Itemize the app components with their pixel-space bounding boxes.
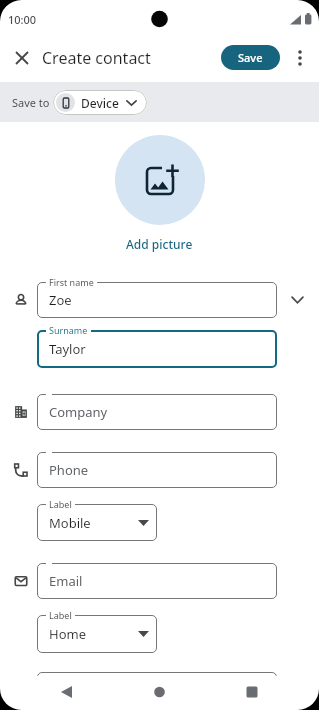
staticText: Taylor bbox=[49, 340, 86, 358]
button[interactable] bbox=[115, 135, 205, 225]
staticText: Device bbox=[81, 95, 119, 111]
staticText: Home bbox=[49, 625, 86, 643]
button[interactable]: Zoe bbox=[37, 282, 277, 318]
button[interactable]: Phone bbox=[37, 452, 277, 488]
staticText: Mobile bbox=[49, 514, 91, 532]
button[interactable]: Email bbox=[37, 563, 277, 599]
button[interactable]: Taylor bbox=[37, 330, 277, 368]
staticText: Email bbox=[49, 572, 83, 590]
staticText: Zoe bbox=[49, 291, 72, 309]
staticText: Save bbox=[238, 50, 263, 65]
staticText: 10:00 bbox=[8, 12, 37, 27]
button[interactable]: Device bbox=[53, 90, 147, 115]
button[interactable]: Add picture bbox=[126, 236, 193, 252]
button[interactable] bbox=[296, 50, 304, 66]
staticText: Phone bbox=[49, 461, 89, 479]
staticText: Save to bbox=[12, 95, 50, 110]
staticText: Label bbox=[49, 498, 72, 510]
staticText: Surname bbox=[49, 324, 88, 336]
staticText: Create contact bbox=[42, 47, 151, 69]
button[interactable] bbox=[0, 676, 107, 710]
button[interactable]: Save bbox=[221, 45, 280, 70]
button[interactable]: Mobile bbox=[37, 504, 157, 541]
button[interactable]: Company bbox=[37, 394, 277, 430]
button[interactable]: Home bbox=[37, 615, 157, 653]
button[interactable] bbox=[291, 296, 304, 304]
staticText: Add picture bbox=[126, 236, 193, 252]
button[interactable] bbox=[15, 51, 29, 65]
staticText: First name bbox=[49, 276, 94, 288]
button[interactable] bbox=[107, 676, 213, 710]
staticText: Company bbox=[49, 403, 108, 421]
button[interactable] bbox=[213, 676, 319, 710]
staticText: Label bbox=[49, 609, 72, 621]
